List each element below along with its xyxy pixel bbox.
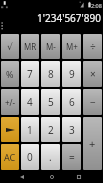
staticText: +/- (5, 97, 16, 108)
button[interactable]: = (62, 144, 81, 170)
button[interactable]: + (83, 117, 102, 170)
button[interactable]: 3 (62, 117, 81, 142)
button[interactable]: 5 (41, 89, 60, 115)
staticText: AC (4, 151, 16, 163)
staticText: % (6, 68, 14, 80)
staticText: × (90, 67, 96, 81)
staticText: 7 (27, 67, 33, 81)
staticText: 6 (69, 95, 75, 109)
staticText: √ (7, 42, 13, 52)
button[interactable]: 6 (62, 89, 81, 115)
staticText: 5 (48, 95, 54, 109)
button[interactable]: M+ (62, 34, 81, 59)
staticText: 3 (69, 123, 75, 137)
staticText: 1 (27, 123, 33, 137)
staticText: 2:08 (91, 2, 102, 9)
staticText: M+ (66, 41, 78, 52)
button[interactable]: 2 (41, 117, 60, 142)
button[interactable]: Home (44, 171, 59, 183)
button[interactable]: M- (41, 34, 60, 59)
button[interactable]: 0 (21, 144, 39, 170)
button[interactable]: % (1, 61, 19, 87)
staticText: 2 (48, 123, 54, 137)
button[interactable]: ÷ (83, 34, 102, 59)
staticText: 4 (27, 95, 33, 109)
button[interactable]: Back (14, 171, 29, 183)
staticText: M- (46, 41, 56, 52)
button[interactable]: More options (0, 10, 7, 33)
button[interactable]: MR (21, 34, 39, 59)
staticText: 9 (69, 67, 75, 81)
button[interactable]: AC (1, 144, 19, 170)
button[interactable]: × (83, 61, 102, 87)
button[interactable]: − (83, 89, 102, 115)
staticText: 8 (48, 67, 54, 81)
button[interactable]: 9 (62, 61, 81, 87)
staticText: 0 (27, 150, 33, 164)
button[interactable]: +/- (1, 89, 19, 115)
button[interactable]: . (41, 144, 60, 170)
staticText: ÷ (90, 40, 96, 54)
staticText: 1'234'567'890 (37, 11, 101, 25)
button[interactable]: 8 (41, 61, 60, 87)
button[interactable]: 7 (21, 61, 39, 87)
button[interactable]: 1 (21, 117, 39, 142)
staticText: − (90, 95, 96, 109)
button[interactable]: Delete (1, 117, 19, 142)
staticText: + (89, 136, 96, 151)
staticText: MR (24, 41, 37, 52)
button[interactable]: 4 (21, 89, 39, 115)
button[interactable]: Recents (71, 171, 86, 183)
staticText: = (69, 150, 75, 164)
staticText: . (49, 150, 52, 164)
button[interactable]: √ (1, 34, 19, 59)
